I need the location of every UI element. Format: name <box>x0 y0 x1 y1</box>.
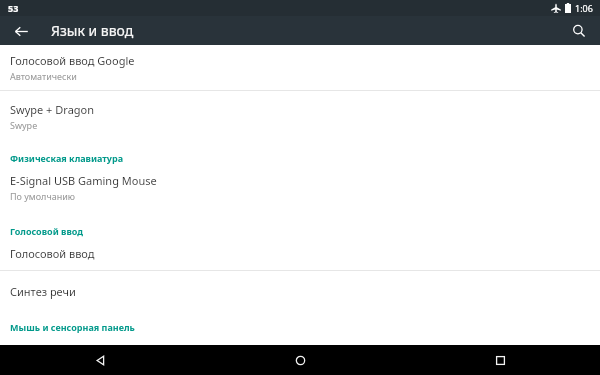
button[interactable]: Swype + Dragon <box>0 91 600 140</box>
staticText: Голосовой ввод <box>10 225 84 237</box>
button[interactable]: Search <box>566 18 592 44</box>
staticText: Голосовой ввод Google <box>10 53 135 68</box>
staticText: Голосовой ввод <box>10 246 95 261</box>
button[interactable]: Синтез речи <box>0 271 600 309</box>
staticText: 1:06 <box>575 2 593 14</box>
button[interactable]: Голосовой ввод Google <box>0 46 600 90</box>
staticText: Swype + Dragon <box>10 102 95 117</box>
button[interactable]: Home <box>200 345 400 375</box>
staticText: Язык и ввод <box>51 21 134 40</box>
staticText: Автоматически <box>10 70 77 82</box>
staticText: E-Signal USB Gaming Mouse <box>10 173 157 188</box>
staticText: 53 <box>8 2 19 14</box>
staticText: Физическая клавиатура <box>10 152 124 164</box>
staticText: По умолчанию <box>10 190 76 202</box>
staticText: Swype <box>10 119 38 131</box>
button[interactable]: Recent apps <box>400 345 600 375</box>
staticText: Мышь и сенсорная панель <box>10 321 135 333</box>
staticText: Синтез речи <box>10 284 76 299</box>
button[interactable]: E-Signal USB Gaming Mouse <box>0 169 600 211</box>
button[interactable]: Голосовой ввод <box>0 242 600 270</box>
button[interactable]: Back <box>0 345 200 375</box>
button[interactable]: Back <box>7 17 35 45</box>
